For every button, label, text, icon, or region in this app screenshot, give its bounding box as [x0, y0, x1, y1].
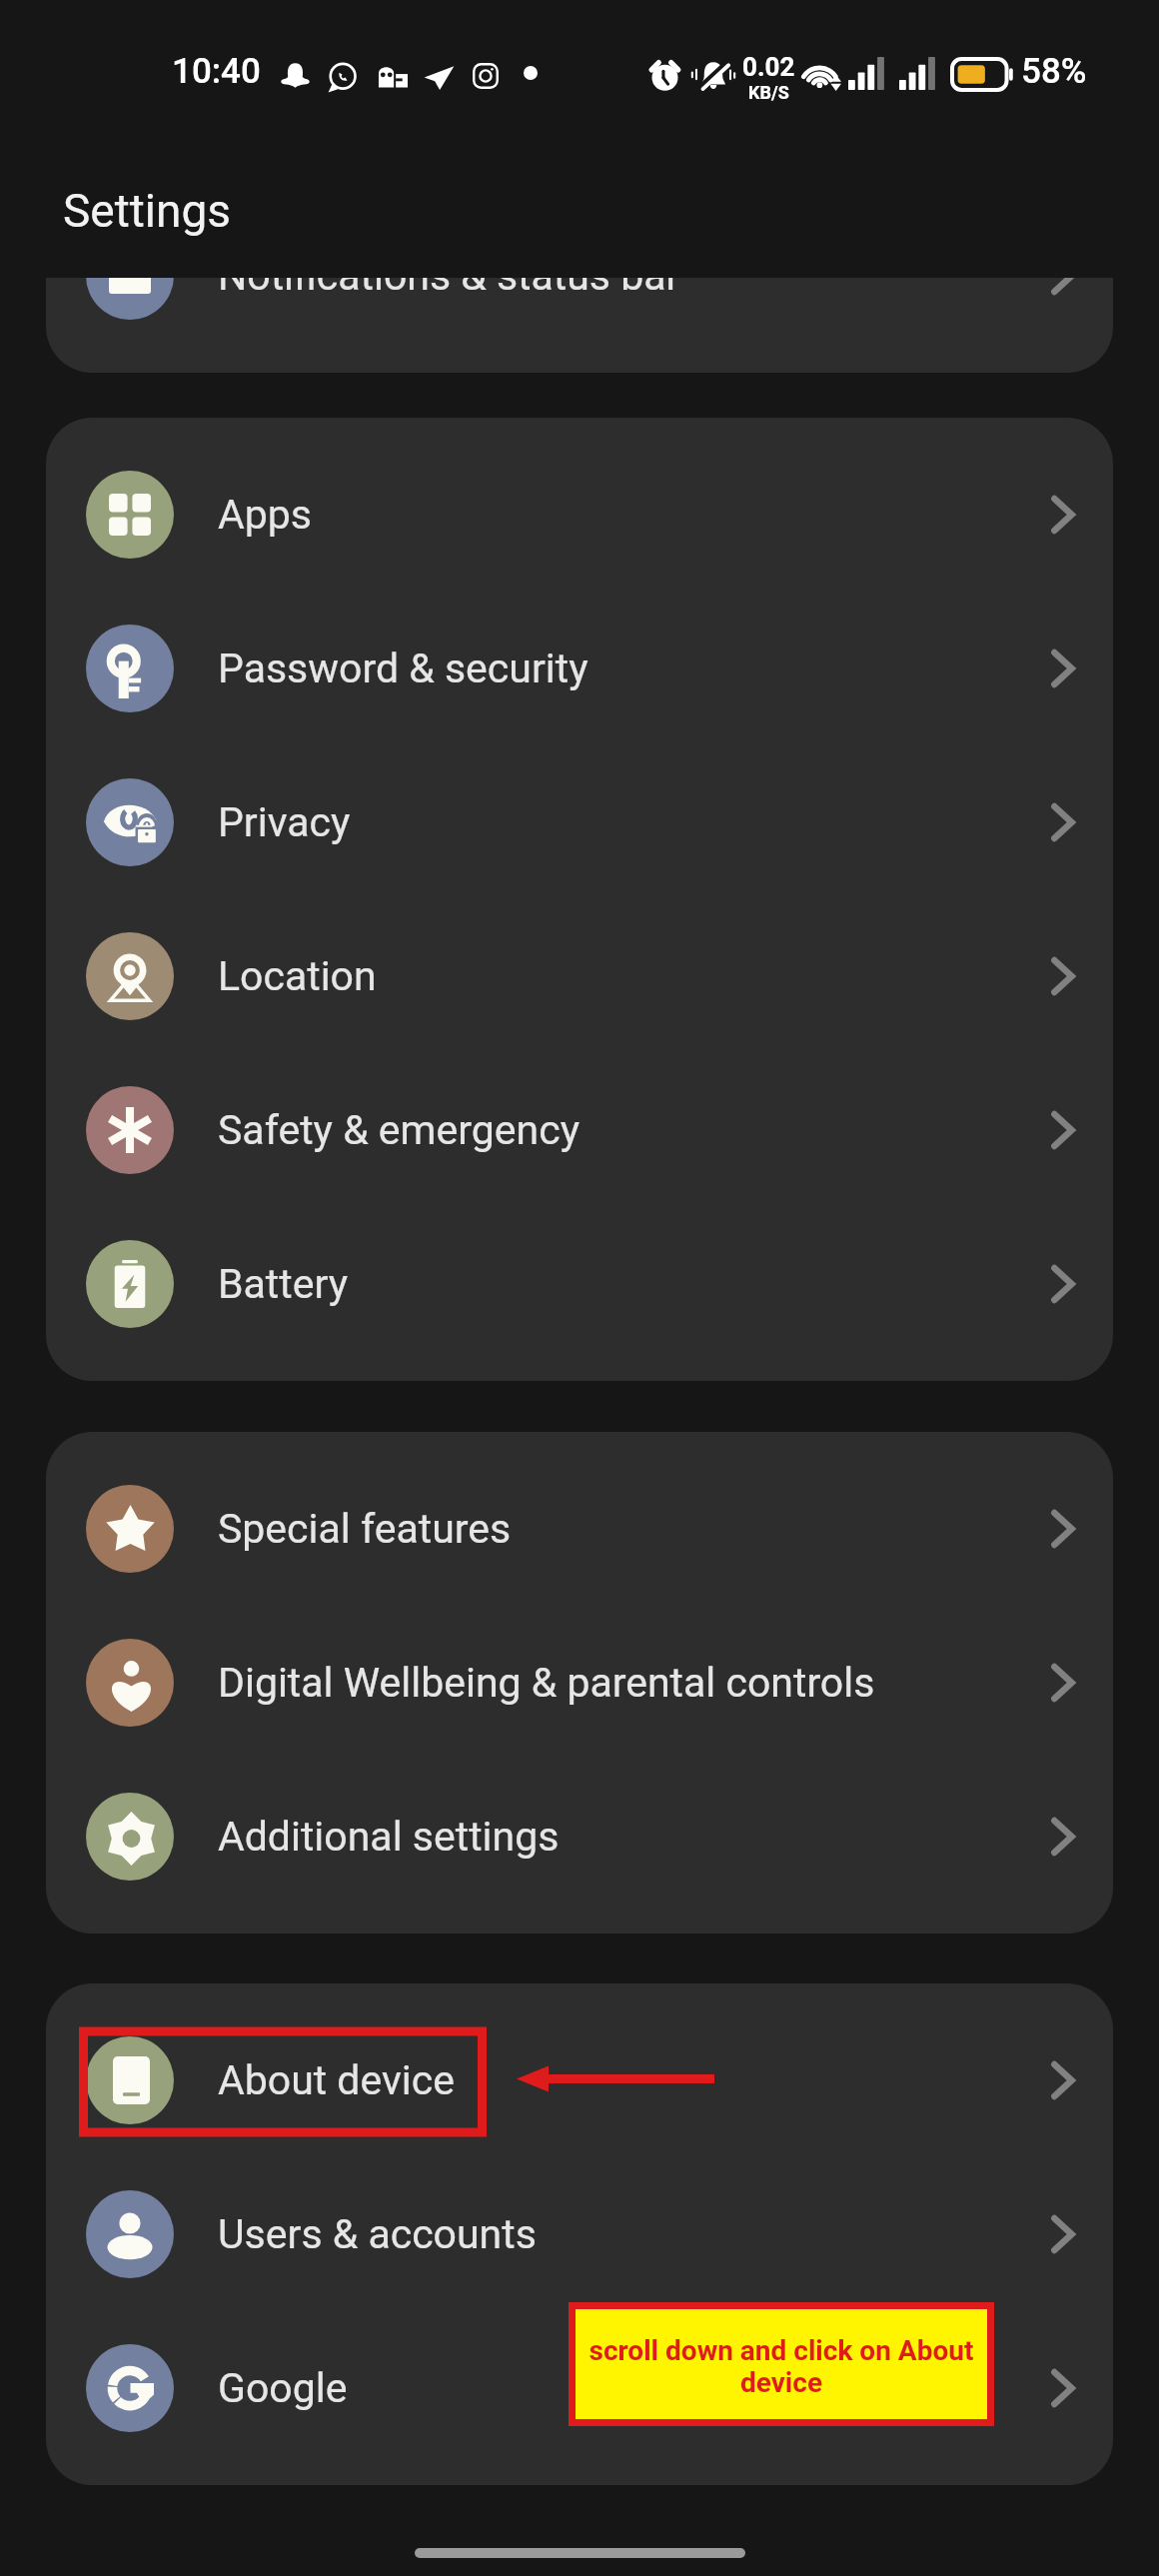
staticText: Digital Wellbeing & parental controls	[218, 1659, 875, 1707]
button[interactable]: Special features	[46, 1452, 1113, 1606]
button[interactable]: Additional settings	[46, 1760, 1113, 1914]
staticText: KB/S	[748, 82, 789, 103]
button[interactable]: About device	[46, 2003, 1113, 2157]
staticText: Battery	[218, 1260, 349, 1308]
staticText: Settings	[63, 184, 231, 238]
button[interactable]: Users & accounts	[46, 2157, 1113, 2311]
button[interactable]: Google	[46, 2311, 1113, 2465]
staticText: Special features	[218, 1505, 512, 1553]
button[interactable]: Safety & emergency	[46, 1053, 1113, 1207]
staticText: About device	[218, 2056, 455, 2104]
button[interactable]: Notifications & status bar	[46, 199, 1113, 353]
staticText: Users & accounts	[218, 2210, 537, 2258]
button[interactable]: Privacy	[46, 745, 1113, 899]
staticText: scroll down and click on About device	[581, 2334, 981, 2399]
staticText: Apps	[218, 491, 312, 539]
button[interactable]: Digital Wellbeing & parental controls	[46, 1606, 1113, 1760]
staticText: Location	[218, 952, 377, 1000]
staticText: Safety & emergency	[218, 1106, 580, 1154]
staticText: Notifications & status bar	[218, 252, 680, 300]
button[interactable]: Apps	[46, 438, 1113, 592]
staticText: 0.02	[742, 52, 795, 82]
staticText: Additional settings	[218, 1813, 560, 1861]
staticText: Privacy	[218, 798, 351, 846]
staticText: Password & security	[218, 644, 588, 692]
staticText: 10:40	[172, 51, 261, 92]
button[interactable]: Location	[46, 899, 1113, 1053]
button[interactable]: Password & security	[46, 592, 1113, 745]
button[interactable]: Battery	[46, 1207, 1113, 1361]
staticText: Google	[218, 2364, 348, 2412]
staticText: 58%	[1021, 51, 1087, 92]
